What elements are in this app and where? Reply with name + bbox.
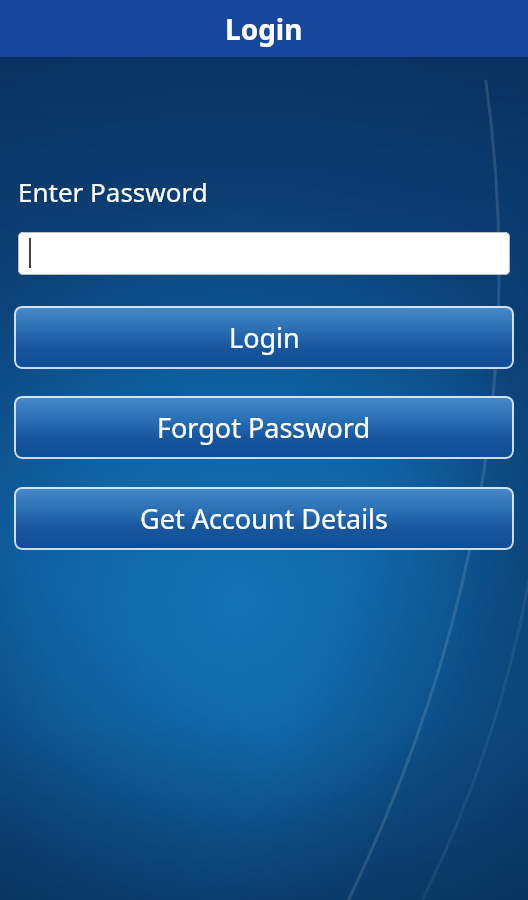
button[interactable]: Forgot Password: [14, 396, 514, 459]
staticText: Enter Password: [18, 174, 208, 209]
button[interactable]: Login: [0, 0, 528, 57]
staticText: Login: [225, 10, 303, 48]
button[interactable]: Get Account Details: [14, 487, 514, 550]
button[interactable]: [18, 232, 510, 275]
staticText: Forgot Password: [157, 409, 371, 446]
button[interactable]: Login: [14, 306, 514, 369]
staticText: Get Account Details: [140, 500, 388, 537]
staticText: Login: [229, 319, 300, 356]
